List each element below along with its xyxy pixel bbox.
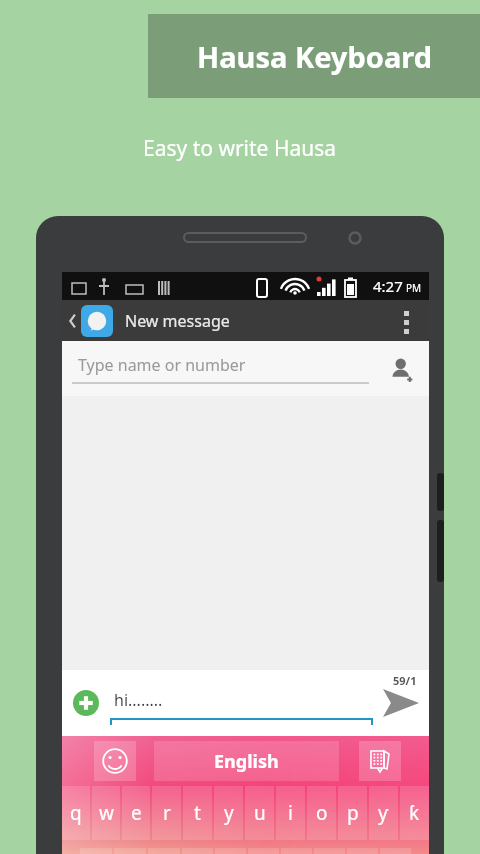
- button[interactable]: hi........: [110, 681, 373, 725]
- staticText: p: [347, 800, 359, 826]
- staticText: Type name or number: [78, 354, 246, 376]
- button[interactable]: Hausa Keyboard: [148, 14, 480, 98]
- staticText: ƙ: [409, 800, 420, 826]
- button[interactable]: Attach: [70, 687, 102, 719]
- button[interactable]: o: [307, 786, 336, 840]
- button[interactable]: q: [62, 786, 90, 840]
- staticText: Easy to write Hausa: [143, 134, 337, 163]
- button[interactable]: ƙ: [400, 786, 429, 840]
- button[interactable]: Add contact: [385, 352, 419, 386]
- button[interactable]: Send: [379, 681, 423, 725]
- staticText: i: [288, 800, 293, 826]
- button[interactable]: p: [338, 786, 367, 840]
- button[interactable]: English: [154, 741, 339, 781]
- button[interactable]: t: [183, 786, 212, 840]
- staticText: y: [224, 800, 234, 826]
- staticText: u: [254, 800, 266, 826]
- staticText: 4:27: [373, 276, 403, 296]
- staticText: o: [316, 800, 328, 826]
- staticText: e: [131, 800, 142, 826]
- staticText: PM: [406, 281, 422, 295]
- button[interactable]: w: [92, 786, 120, 840]
- staticText: hi........: [114, 689, 163, 711]
- button[interactable]: Emoji: [94, 741, 136, 781]
- button[interactable]: i: [276, 786, 305, 840]
- button[interactable]: Back: [65, 305, 81, 337]
- button[interactable]: More options: [389, 304, 423, 338]
- staticText: t: [194, 800, 201, 826]
- staticText: w: [99, 800, 114, 826]
- staticText: r: [163, 800, 171, 826]
- button[interactable]: Change keyboard: [359, 741, 401, 781]
- button[interactable]: Type name or number: [62, 341, 429, 396]
- button[interactable]: ƴ: [369, 786, 398, 840]
- staticText: q: [70, 800, 82, 826]
- button[interactable]: s: [114, 848, 146, 854]
- button[interactable]: y: [214, 786, 243, 840]
- staticText: 59/1: [393, 673, 417, 688]
- button[interactable]: u: [245, 786, 274, 840]
- staticText: English: [214, 749, 279, 774]
- button[interactable]: e: [122, 786, 150, 840]
- staticText: New message: [125, 310, 230, 332]
- button[interactable]: r: [152, 786, 181, 840]
- staticText: ƴ: [378, 800, 389, 826]
- staticText: Hausa Keyboard: [197, 37, 432, 76]
